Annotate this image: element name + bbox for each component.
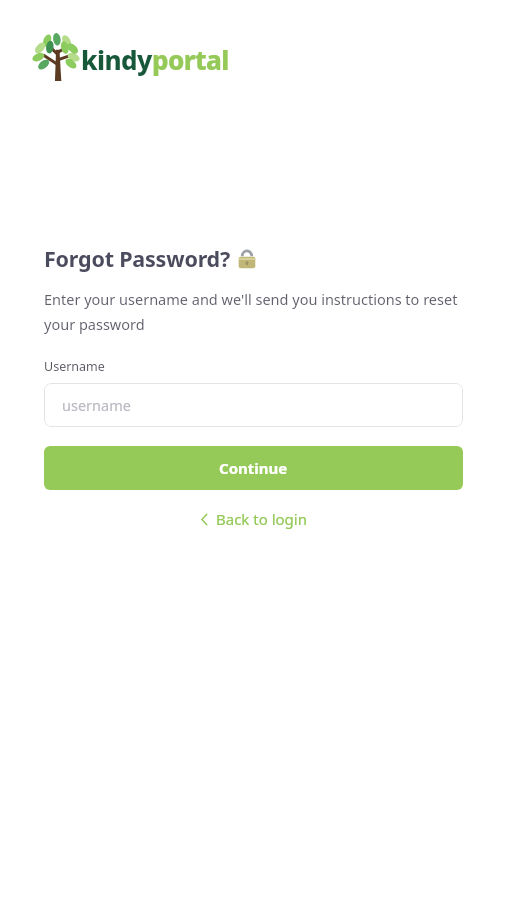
staticText: kindy <box>81 42 152 77</box>
staticText: Back to login <box>216 509 307 529</box>
button[interactable]: username <box>44 383 463 427</box>
staticText: Enter your username and we'll send you i… <box>44 289 463 334</box>
button[interactable]: kindyportal home <box>34 36 229 82</box>
button[interactable]: Back to login <box>193 503 315 535</box>
staticText: Forgot Password? <box>44 244 231 273</box>
staticText: Username <box>44 358 105 375</box>
staticText: portal <box>152 42 229 77</box>
button[interactable]: Continue <box>44 446 463 490</box>
staticText: username <box>62 395 131 415</box>
staticText: Continue <box>219 458 288 478</box>
